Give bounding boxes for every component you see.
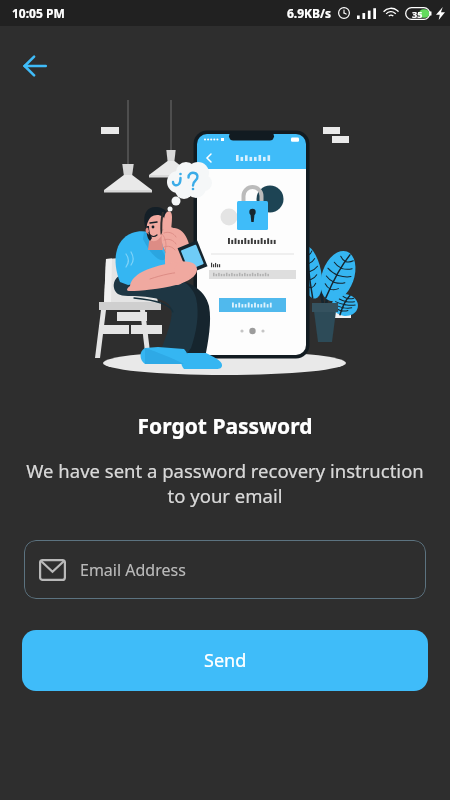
staticText: Forgot Password [0, 412, 450, 441]
staticText: 6.9KB/s [287, 5, 332, 21]
staticText: Send [204, 648, 247, 673]
staticText: 35 [412, 8, 423, 20]
button[interactable]: Email Address [24, 540, 426, 599]
staticText: We have sent a password recovery instruc… [8, 458, 442, 509]
staticText: 10:05 PM [12, 5, 65, 21]
button[interactable]: Back [12, 44, 58, 88]
button[interactable]: Send [22, 630, 428, 691]
staticText: Email Address [80, 559, 186, 581]
